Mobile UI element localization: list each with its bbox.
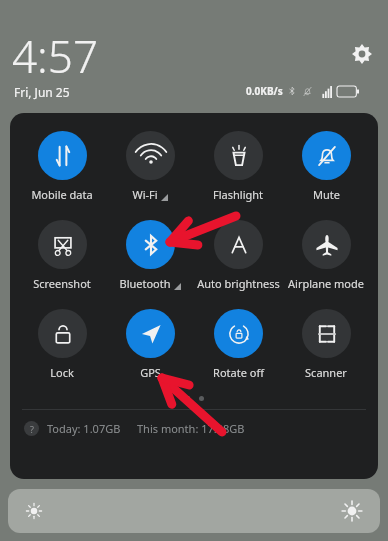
staticText: This month: 17.28GB	[137, 421, 245, 436]
staticText: Airplane mode	[288, 276, 364, 291]
button[interactable]: Rotate off	[194, 309, 282, 380]
button[interactable]: Screenshot	[18, 220, 106, 291]
staticText: ?	[30, 423, 34, 435]
button[interactable]: ?	[24, 421, 378, 436]
staticText: Wi-Fi	[132, 187, 158, 202]
staticText: Today: 1.07GB	[47, 421, 121, 436]
staticText: Mobile data	[31, 187, 93, 202]
button[interactable]: Scanner	[282, 309, 370, 380]
staticText: Bluetooth	[119, 276, 171, 291]
button[interactable]: Lock	[18, 309, 106, 380]
staticText: Scanner	[305, 365, 347, 380]
staticText: Flashlight	[213, 187, 263, 202]
button[interactable]: Bluetooth	[106, 220, 194, 291]
staticText: 0.0KB/s	[246, 84, 283, 98]
button[interactable]: GPS	[106, 309, 194, 380]
button[interactable]: Flashlight	[194, 131, 282, 202]
staticText: Rotate off	[213, 365, 264, 380]
button[interactable]: Mobile data	[18, 131, 106, 202]
button[interactable]: Brightness	[8, 489, 380, 533]
button[interactable]: Wi-Fi	[106, 131, 194, 202]
staticText: Mute	[313, 187, 340, 202]
staticText: Fri, Jun 25	[14, 84, 70, 100]
staticText: GPS	[140, 365, 161, 380]
staticText: Screenshot	[33, 276, 91, 291]
button[interactable]: Settings	[348, 40, 376, 68]
button[interactable]: Airplane mode	[282, 220, 370, 291]
button[interactable]: Mute	[282, 131, 370, 202]
staticText: Lock	[50, 365, 74, 380]
button[interactable]: Auto brightness	[194, 220, 282, 291]
staticText: Auto brightness	[197, 276, 280, 291]
staticText: 4:57	[12, 26, 99, 86]
